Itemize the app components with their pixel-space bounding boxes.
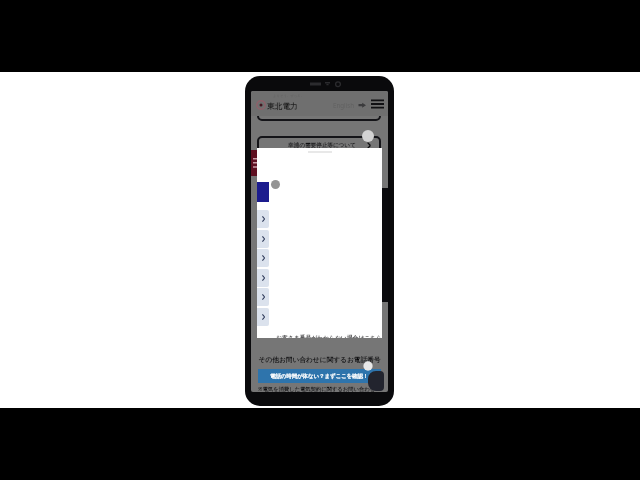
staticText: 幸浦の需要停止等について <box>288 142 356 149</box>
staticText: その他お問い合わせに関するお電話番号 <box>251 356 388 364</box>
button[interactable]: English <box>333 101 355 109</box>
button[interactable]: Open item 2 <box>257 230 269 248</box>
staticText: 東北電力 <box>267 102 298 112</box>
button[interactable]: Open item 3 <box>257 249 269 267</box>
button[interactable]: Menu <box>371 99 384 109</box>
button[interactable]: 電話の時間が体ない？まずここを確認！ <box>258 369 381 383</box>
button[interactable]: Open item 5 <box>257 288 269 306</box>
button[interactable]: 幸浦の需要停止等について <box>257 136 381 160</box>
button[interactable]: Open item 6 <box>257 308 269 326</box>
button[interactable]: Open item 1 <box>257 210 269 228</box>
staticText: お客さま番号がわからない場合はこちら <box>276 334 382 338</box>
button[interactable]: Language <box>358 101 366 109</box>
staticText: 電話の時間が体ない？まずここを確認！ <box>270 373 369 380</box>
button[interactable]: Open item 4 <box>257 269 269 287</box>
staticText: ※電気を消費した電気契約に関するお問い合わせ <box>258 385 375 392</box>
